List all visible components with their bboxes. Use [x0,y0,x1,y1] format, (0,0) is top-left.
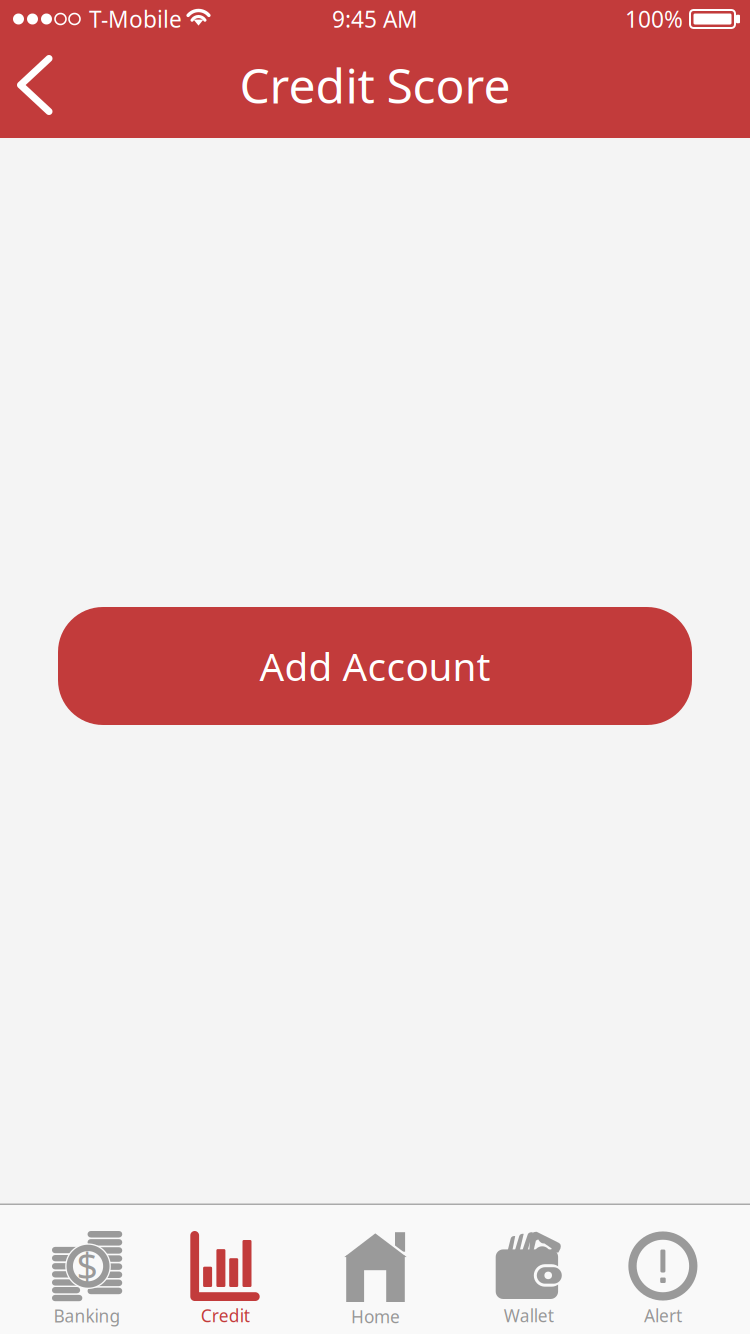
staticText: 100% [625,4,683,34]
staticText: Banking [54,1304,121,1327]
staticText: Alert [644,1304,682,1327]
button[interactable]: Credit [157,1205,302,1334]
button[interactable]: Add Account [58,607,692,725]
button[interactable]: Alert [593,1205,738,1334]
staticText: Credit [201,1304,250,1327]
staticText: T-Mobile [89,4,182,34]
staticText: 9:45 AM [332,4,418,34]
button[interactable]: Home [302,1205,448,1334]
staticText: Credit Score [239,53,510,117]
button[interactable]: $ [12,1205,157,1334]
button[interactable]: Wallet [448,1205,593,1334]
staticText: Add Account [259,640,490,692]
staticText: $ [76,1241,97,1291]
staticText: Home [351,1305,400,1328]
staticText: Wallet [504,1304,554,1327]
button[interactable]: Back [0,46,72,130]
